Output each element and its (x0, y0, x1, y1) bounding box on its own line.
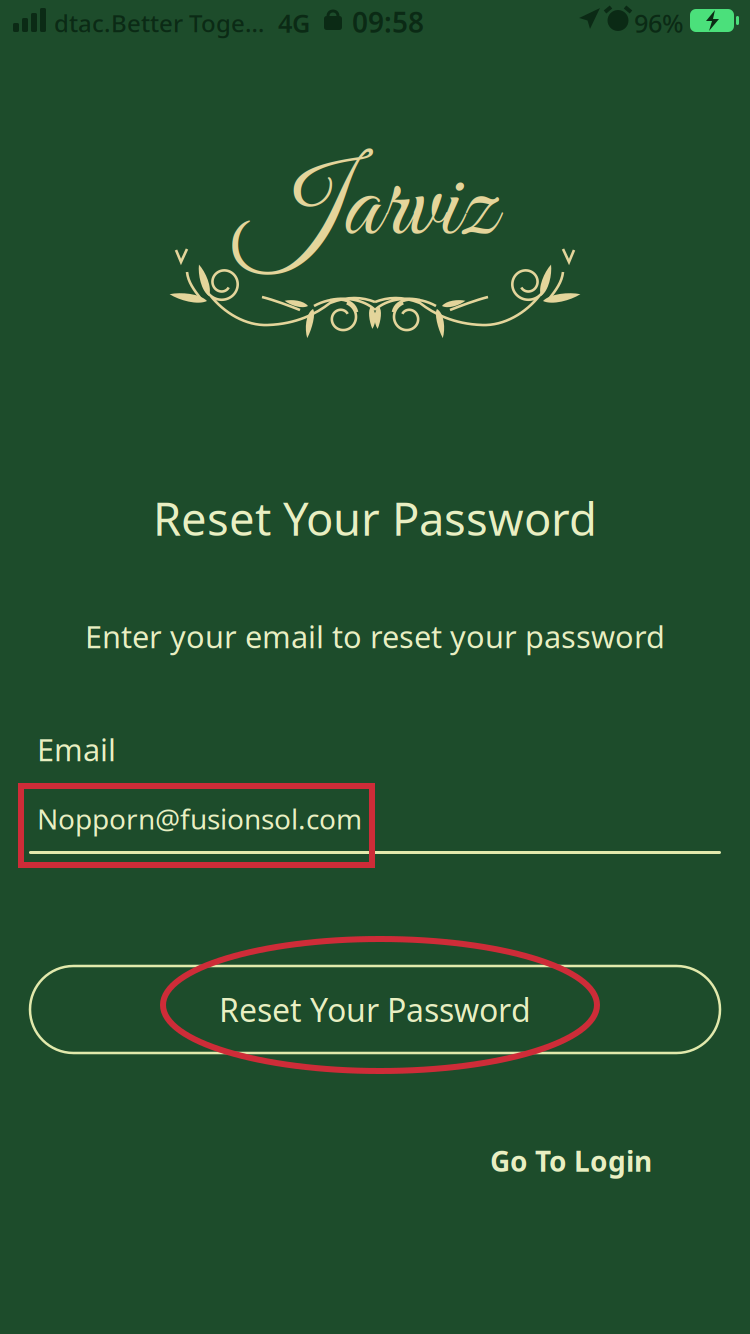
staticText: 96% (634, 6, 684, 40)
staticText: 09:58 (352, 3, 424, 41)
staticText: Go To Login (490, 1142, 652, 1180)
staticText: Enter your email to reset your password (85, 616, 665, 657)
staticText: Reset Your Password (153, 488, 597, 548)
staticText: Email (37, 729, 116, 770)
button[interactable]: Reset Your Password (30, 966, 720, 1053)
staticText: dtac.Better Toge… (54, 7, 264, 39)
button[interactable]: Go To Login (471, 1141, 671, 1181)
staticText: Nopporn@fusionsol.com (37, 800, 362, 837)
staticText: Reset Your Password (219, 988, 531, 1031)
staticText: Jarviz (238, 144, 495, 276)
staticText: 4G (278, 6, 310, 40)
